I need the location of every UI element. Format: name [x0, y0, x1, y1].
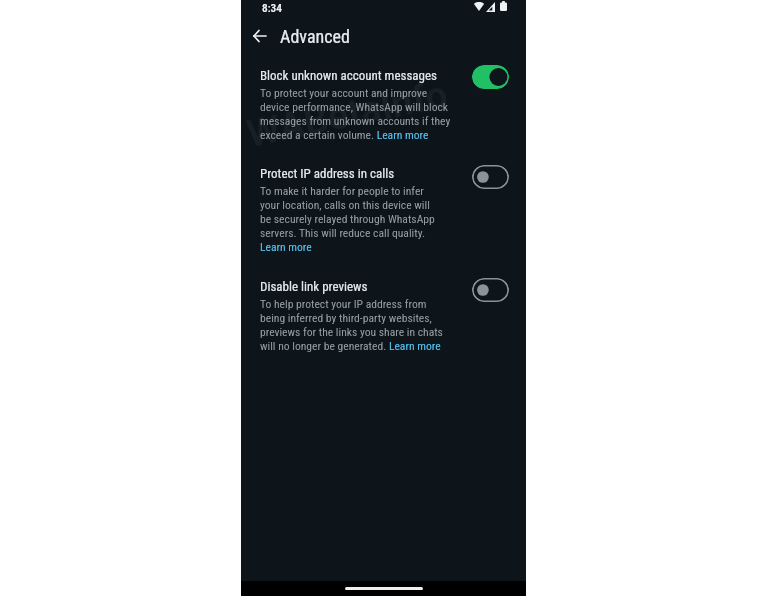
staticText: Advanced [280, 26, 350, 47]
staticText: To protect your account and improve devi… [260, 86, 451, 142]
staticText: WABetaInfo [243, 72, 452, 157]
staticText: Protect IP address in calls [260, 166, 395, 181]
button[interactable]: Switch on [472, 65, 509, 89]
staticText: To help protect your IP address from bei… [260, 297, 443, 353]
button[interactable] [241, 152, 526, 262]
button[interactable]: Switch off [472, 165, 509, 189]
staticText: 8:34 [262, 1, 282, 14]
button[interactable]: Switch off [472, 278, 509, 302]
staticText: Block unknown account messages [260, 68, 438, 83]
button[interactable] [241, 54, 526, 150]
staticText: Disable link previews [260, 279, 368, 294]
button[interactable]: Back [247, 23, 272, 48]
staticText: To make it harder for people to infer yo… [260, 184, 435, 254]
button[interactable] [241, 265, 526, 361]
